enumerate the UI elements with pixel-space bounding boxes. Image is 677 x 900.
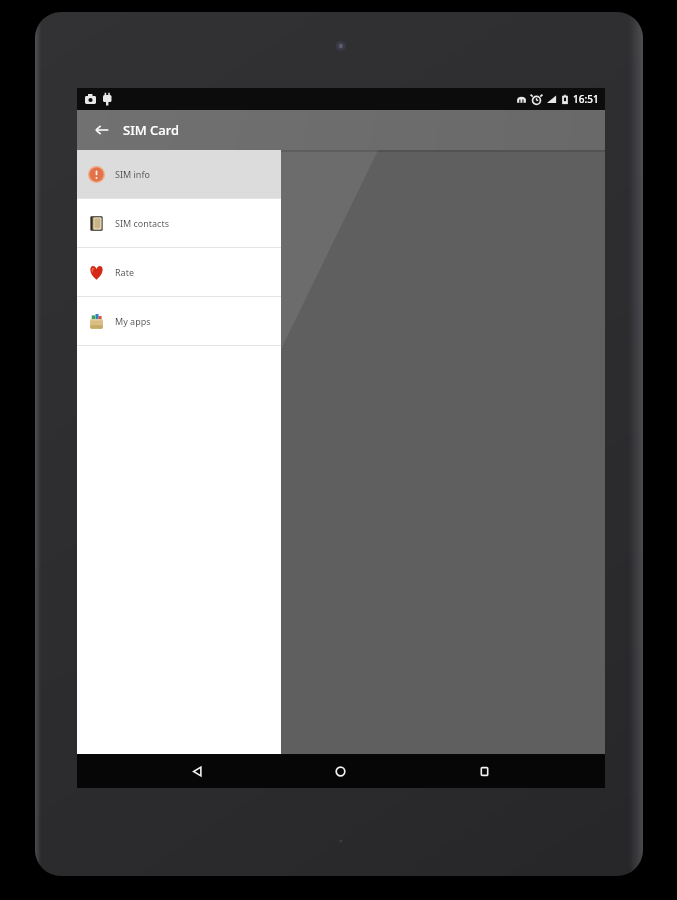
button[interactable]: Back [174,754,220,788]
staticText: SIM contacts [115,217,170,229]
button[interactable]: SIM info [77,150,281,198]
button[interactable]: Home [317,754,363,788]
staticText: Rate [115,266,134,278]
button[interactable]: Recent apps [461,754,507,788]
staticText: 16:51 [573,92,599,106]
staticText: SIM info [115,168,150,180]
button[interactable]: Rate [77,248,281,296]
staticText: SIM Card [123,121,180,139]
staticText: My apps [115,315,151,327]
button[interactable]: SIM contacts [77,199,281,247]
button[interactable]: Back [87,115,117,145]
button[interactable]: My apps [77,297,281,345]
